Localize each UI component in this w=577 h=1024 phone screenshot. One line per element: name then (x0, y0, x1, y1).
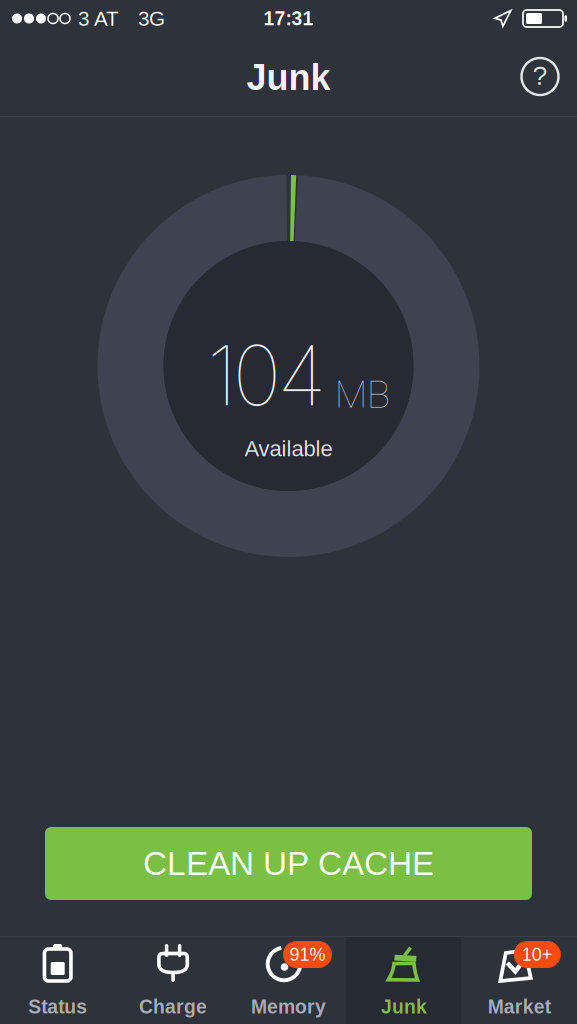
staticText: 10+ (522, 944, 553, 964)
staticText: Memory (251, 996, 326, 1018)
staticText: Junk (246, 57, 330, 98)
staticText: 17:31 (263, 8, 313, 29)
staticText: 91% (289, 944, 325, 964)
button[interactable]: Status (0, 937, 115, 1024)
staticText: Market (488, 996, 551, 1018)
button[interactable]: Junk (346, 937, 462, 1024)
staticText: Available (244, 436, 332, 461)
button[interactable]: 91% (231, 937, 346, 1024)
staticText: Charge (139, 996, 207, 1018)
staticText: MB (335, 372, 390, 417)
button[interactable]: CLEAN UP CACHE (45, 827, 532, 900)
staticText: CLEAN UP CACHE (143, 845, 434, 882)
staticText: Status (28, 996, 87, 1018)
staticText: 3G (138, 7, 165, 30)
staticText: ? (532, 61, 547, 90)
staticText: Junk (381, 996, 427, 1018)
staticText: 104 (207, 325, 326, 425)
staticText: 3 AT (78, 7, 119, 30)
button[interactable]: Help (511, 45, 569, 107)
button[interactable]: 10+ (462, 937, 577, 1024)
button[interactable]: Charge (115, 937, 231, 1024)
